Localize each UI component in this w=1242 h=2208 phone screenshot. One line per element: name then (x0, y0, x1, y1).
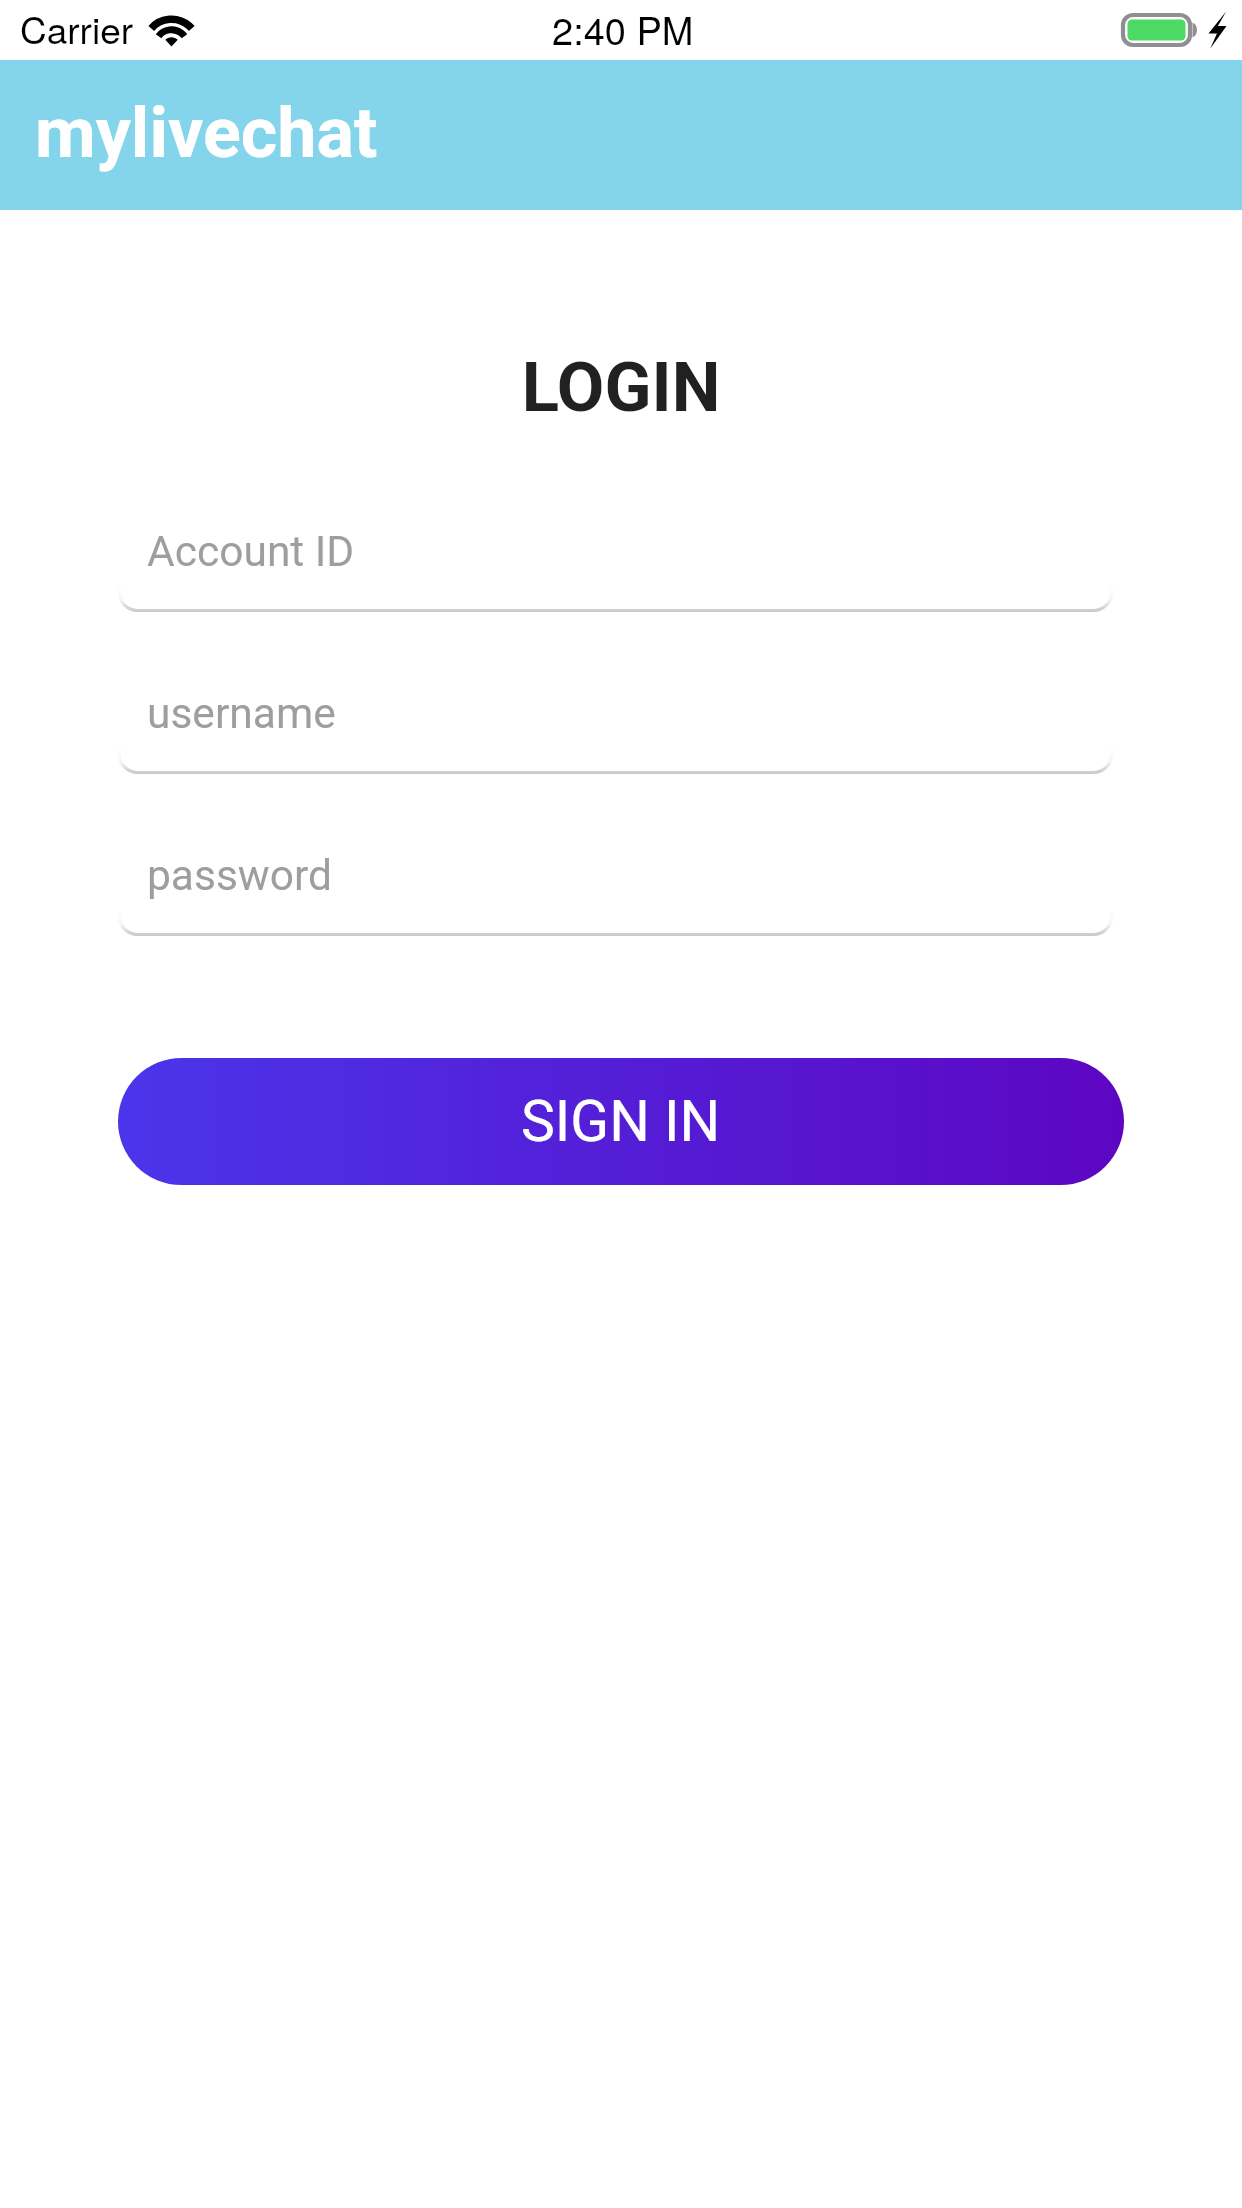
other: Wi-Fi signal (149, 15, 194, 46)
button[interactable]: username (118, 654, 1113, 774)
other: Battery charging (1121, 13, 1227, 47)
staticText: username (147, 689, 336, 739)
button[interactable]: SIGN IN (118, 1058, 1124, 1185)
staticText: SIGN IN (521, 1088, 721, 1155)
button[interactable]: Account ID (118, 492, 1113, 612)
staticText: Carrier (20, 2, 134, 55)
staticText: 2:40 PM (552, 1, 694, 55)
staticText: LOGIN (0, 347, 1242, 428)
staticText: mylivechat (35, 92, 378, 174)
staticText: password (147, 851, 333, 901)
button[interactable]: password (118, 816, 1113, 936)
staticText: Account ID (147, 527, 355, 577)
